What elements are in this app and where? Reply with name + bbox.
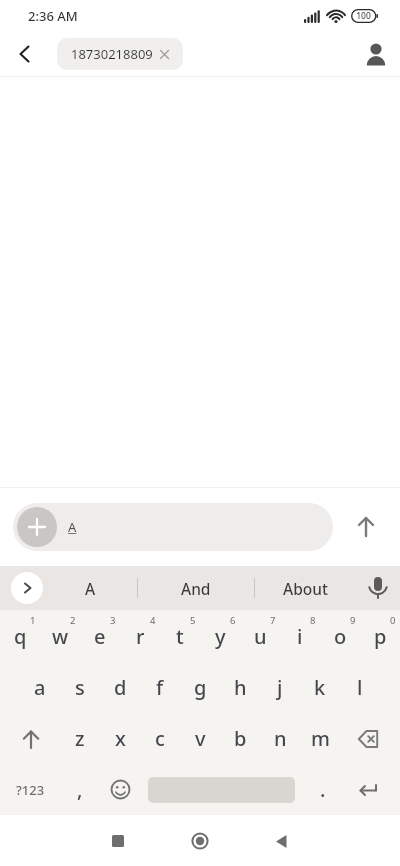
staticText: And (181, 578, 211, 599)
staticText: m (311, 725, 330, 752)
button[interactable]: v (180, 713, 220, 764)
button[interactable]: . (300, 764, 345, 815)
button[interactable] (342, 503, 390, 551)
button[interactable] (140, 764, 300, 815)
staticText: . (320, 776, 326, 803)
staticText: 2 (70, 614, 76, 627)
button[interactable] (98, 821, 138, 861)
button[interactable]: A (43, 566, 137, 610)
staticText: , (77, 776, 83, 803)
button[interactable]: o (320, 610, 360, 662)
button[interactable]: q (0, 610, 40, 662)
button[interactable]: y (200, 610, 240, 662)
button[interactable] (100, 764, 140, 815)
staticText: 2:36 AM (28, 7, 78, 25)
staticText: 1 (30, 614, 36, 627)
staticText: s (75, 674, 85, 701)
button[interactable]: r (120, 610, 160, 662)
button[interactable]: l (340, 662, 380, 713)
button[interactable] (345, 764, 391, 815)
staticText: k (314, 674, 326, 701)
staticText: 6 (230, 614, 236, 627)
staticText: n (274, 725, 287, 752)
button[interactable] (180, 821, 220, 861)
button[interactable]: n (260, 713, 300, 764)
staticText: y (215, 623, 226, 650)
button[interactable]: w (40, 610, 80, 662)
staticText: d (114, 674, 127, 701)
button[interactable]: And (138, 566, 254, 610)
staticText: 18730218809 (71, 45, 153, 63)
staticText: About (283, 578, 328, 599)
staticText: l (357, 674, 363, 701)
staticText: 9 (350, 614, 356, 627)
staticText: 8 (310, 614, 316, 627)
staticText: t (176, 623, 184, 650)
button[interactable]: j (260, 662, 300, 713)
button[interactable]: p (360, 610, 400, 662)
button[interactable] (11, 572, 43, 604)
button[interactable] (356, 566, 400, 610)
staticText: a (34, 674, 46, 701)
button[interactable] (0, 713, 60, 764)
staticText: r (136, 623, 145, 650)
staticText: z (75, 725, 85, 752)
button[interactable]: z (60, 713, 100, 764)
button[interactable]: A (13, 503, 333, 551)
button[interactable] (340, 713, 400, 764)
staticText: g (194, 674, 207, 701)
button[interactable]: k (300, 662, 340, 713)
staticText: j (277, 674, 283, 701)
staticText: 7 (270, 614, 276, 627)
button[interactable] (354, 32, 398, 76)
button[interactable]: h (220, 662, 260, 713)
button[interactable]: 18730218809 (57, 38, 183, 70)
button[interactable]: About (255, 566, 356, 610)
button[interactable]: f (140, 662, 180, 713)
button[interactable]: x (100, 713, 140, 764)
button[interactable]: u (240, 610, 280, 662)
staticText: b (234, 725, 247, 752)
button[interactable]: g (180, 662, 220, 713)
staticText: A (68, 518, 77, 536)
staticText: x (115, 725, 126, 752)
button[interactable]: d (100, 662, 140, 713)
staticText: q (14, 623, 27, 650)
button[interactable]: , (60, 764, 100, 815)
staticText: p (374, 623, 387, 650)
staticText: 4 (150, 614, 156, 627)
button[interactable]: a (20, 662, 60, 713)
staticText: ?123 (16, 781, 45, 799)
button[interactable]: t (160, 610, 200, 662)
staticText: i (297, 623, 303, 650)
button[interactable]: c (140, 713, 180, 764)
staticText: u (254, 623, 267, 650)
staticText: 5 (190, 614, 196, 627)
button[interactable]: e (80, 610, 120, 662)
button[interactable] (261, 821, 301, 861)
staticText: A (85, 578, 96, 599)
staticText: h (234, 674, 247, 701)
button[interactable]: b (220, 713, 260, 764)
staticText: o (334, 623, 347, 650)
staticText: e (94, 623, 106, 650)
staticText: f (156, 674, 164, 701)
button[interactable]: m (300, 713, 340, 764)
button[interactable]: i (280, 610, 320, 662)
staticText: 3 (110, 614, 116, 627)
staticText: 0 (390, 614, 396, 627)
staticText: v (195, 725, 206, 752)
button[interactable]: ?123 (0, 764, 60, 815)
button[interactable] (0, 32, 44, 76)
staticText: w (52, 623, 69, 650)
staticText: c (155, 725, 165, 752)
button[interactable]: s (60, 662, 100, 713)
button[interactable] (17, 507, 57, 547)
staticText: 100 (356, 10, 371, 22)
